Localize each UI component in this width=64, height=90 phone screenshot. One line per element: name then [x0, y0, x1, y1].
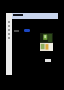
button[interactable]: [24, 29, 30, 32]
button[interactable]: [40, 33, 53, 51]
button[interactable]: [12, 13, 58, 19]
